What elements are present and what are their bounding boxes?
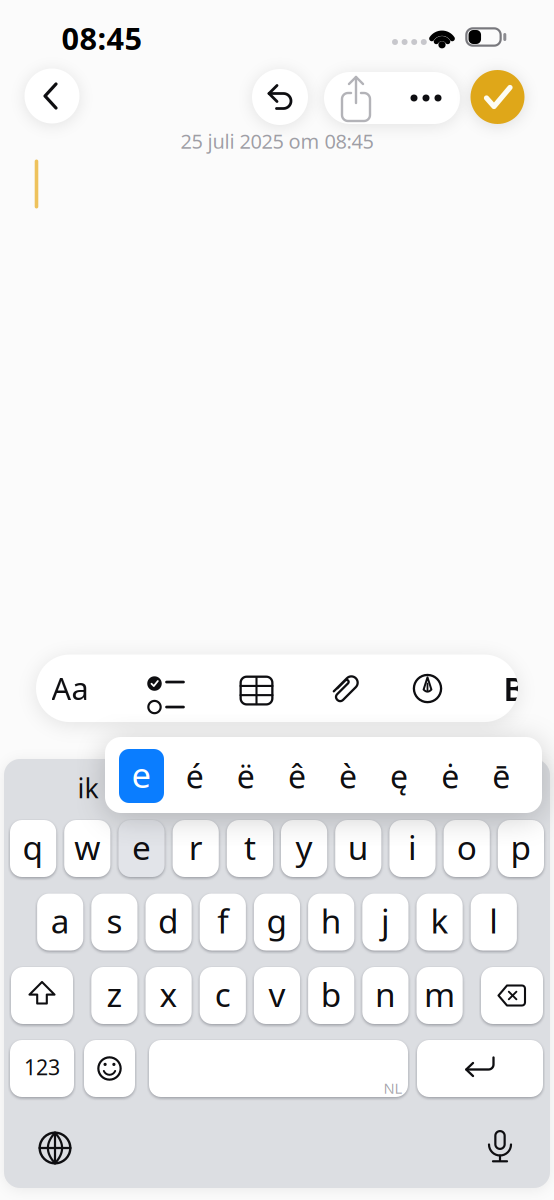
button[interactable]: v bbox=[254, 967, 300, 1024]
staticText: l bbox=[489, 898, 498, 943]
button[interactable]: l bbox=[471, 893, 517, 950]
button[interactable]: k bbox=[416, 893, 463, 950]
button[interactable]: c bbox=[200, 967, 246, 1024]
staticText: n bbox=[375, 972, 396, 1016]
staticText: 08:45 bbox=[61, 18, 142, 58]
staticText: h bbox=[321, 898, 342, 943]
button[interactable]: Bold bbox=[501, 658, 527, 718]
button[interactable]: y bbox=[281, 820, 327, 877]
staticText: i bbox=[408, 825, 417, 869]
button[interactable]: d bbox=[145, 893, 192, 950]
button[interactable]: Format bbox=[40, 658, 100, 718]
button[interactable]: e bbox=[118, 820, 165, 877]
button[interactable]: Space bbox=[149, 1040, 408, 1097]
staticText: ê bbox=[288, 755, 306, 797]
staticText: B bbox=[503, 667, 524, 710]
button[interactable]: w bbox=[64, 820, 110, 877]
staticText: t bbox=[244, 825, 256, 869]
staticText: k bbox=[431, 898, 449, 943]
button[interactable]: i bbox=[389, 820, 436, 877]
staticText: e bbox=[131, 751, 151, 797]
button[interactable]: u bbox=[335, 820, 381, 877]
button[interactable]: ę bbox=[377, 749, 422, 803]
button[interactable]: Attach bbox=[315, 658, 375, 718]
staticText: Aa bbox=[51, 668, 88, 708]
button[interactable]: é bbox=[172, 749, 217, 803]
staticText: ē bbox=[492, 755, 510, 797]
staticText: c bbox=[215, 972, 231, 1016]
button[interactable]: b bbox=[308, 967, 354, 1024]
button[interactable]: ė bbox=[428, 749, 473, 803]
button[interactable]: x bbox=[145, 967, 192, 1024]
staticText: m bbox=[424, 972, 455, 1016]
button[interactable]: j bbox=[362, 893, 408, 950]
staticText: g bbox=[266, 898, 287, 943]
button[interactable]: Shift bbox=[11, 967, 73, 1024]
button[interactable]: 123 bbox=[10, 1040, 74, 1097]
staticText: s bbox=[106, 898, 122, 943]
button[interactable]: Checklist bbox=[134, 658, 194, 718]
staticText: 25 juli 2025 om 08:45 bbox=[180, 128, 373, 154]
button[interactable]: q bbox=[10, 820, 56, 877]
button[interactable]: s bbox=[91, 893, 137, 950]
staticText: f bbox=[217, 898, 228, 943]
staticText: z bbox=[106, 972, 122, 1016]
button[interactable]: è bbox=[325, 749, 370, 803]
button[interactable]: ê bbox=[274, 749, 319, 803]
staticText: ę bbox=[390, 755, 408, 797]
staticText: è bbox=[339, 755, 357, 797]
staticText: r bbox=[189, 825, 203, 869]
button[interactable]: Back bbox=[24, 68, 79, 123]
staticText: a bbox=[51, 898, 70, 943]
staticText: p bbox=[510, 825, 531, 869]
button[interactable]: p bbox=[498, 820, 544, 877]
button[interactable]: a bbox=[37, 893, 83, 950]
button[interactable]: Markup bbox=[397, 658, 457, 718]
staticText: e bbox=[132, 825, 151, 869]
button[interactable]: Share bbox=[328, 72, 384, 124]
button[interactable]: Next keyboard bbox=[33, 1126, 77, 1170]
button[interactable]: r bbox=[173, 820, 219, 877]
button[interactable]: Undo bbox=[252, 69, 308, 125]
button[interactable]: Done bbox=[470, 70, 524, 124]
staticText: y bbox=[296, 825, 313, 869]
button[interactable]: Dictation bbox=[478, 1125, 522, 1169]
button[interactable]: n bbox=[362, 967, 408, 1024]
staticText: 123 bbox=[24, 1053, 60, 1081]
staticText: é bbox=[186, 755, 204, 797]
button[interactable]: t bbox=[227, 820, 273, 877]
staticText: x bbox=[160, 972, 178, 1016]
staticText: j bbox=[381, 898, 390, 943]
button[interactable]: z bbox=[91, 967, 137, 1024]
staticText: ë bbox=[237, 755, 255, 797]
button[interactable]: Table bbox=[226, 658, 286, 718]
button[interactable]: h bbox=[308, 893, 354, 950]
button[interactable]: Return bbox=[417, 1040, 543, 1097]
staticText: d bbox=[158, 898, 179, 943]
staticText: q bbox=[23, 825, 44, 869]
staticText: w bbox=[74, 825, 100, 869]
staticText: ik bbox=[77, 770, 98, 806]
staticText: v bbox=[268, 972, 285, 1016]
staticText: b bbox=[321, 972, 342, 1016]
button[interactable]: ē bbox=[479, 749, 524, 803]
button[interactable]: More bbox=[398, 73, 454, 123]
button[interactable]: Emoji bbox=[84, 1040, 135, 1097]
staticText: ė bbox=[441, 755, 459, 797]
staticText: u bbox=[348, 825, 369, 869]
button[interactable]: o bbox=[444, 820, 490, 877]
staticText: o bbox=[457, 825, 477, 869]
button[interactable]: f bbox=[200, 893, 246, 950]
button[interactable]: g bbox=[254, 893, 300, 950]
button[interactable]: Delete bbox=[481, 967, 543, 1024]
button[interactable]: e bbox=[119, 749, 164, 803]
button[interactable]: m bbox=[416, 967, 463, 1024]
button[interactable]: ë bbox=[223, 749, 268, 803]
staticText: NL bbox=[383, 1078, 402, 1098]
